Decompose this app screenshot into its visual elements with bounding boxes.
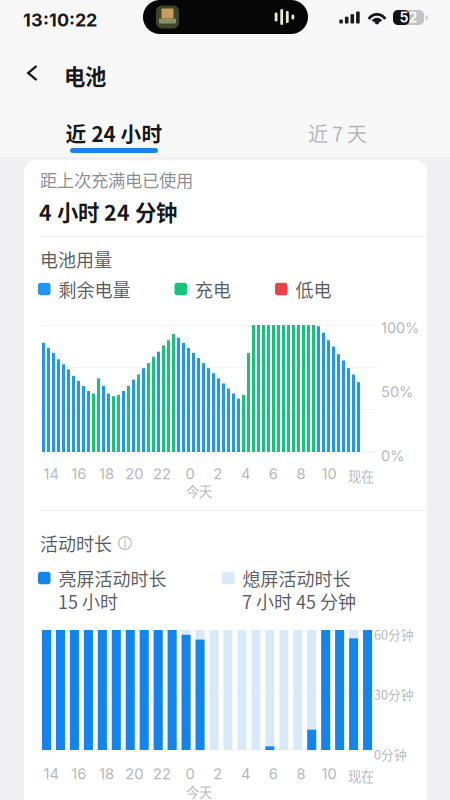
- staticText: 电池用量: [40, 246, 112, 272]
- staticText: 50%: [381, 383, 413, 401]
- staticText: 13:10:22: [23, 9, 97, 31]
- staticText: i: [123, 536, 126, 550]
- button[interactable]: 返回: [26, 54, 58, 92]
- staticText: 14: [43, 465, 58, 483]
- staticText: 0%: [381, 447, 404, 465]
- staticText: 100%: [381, 319, 419, 337]
- staticText: 4: [241, 765, 250, 783]
- staticText: 活动时长: [40, 530, 112, 556]
- staticText: 现在: [348, 766, 374, 785]
- staticText: 52: [399, 9, 417, 26]
- staticText: 0分钟: [374, 745, 407, 763]
- staticText: 8: [297, 465, 306, 483]
- staticText: 0: [185, 465, 194, 483]
- staticText: 10: [321, 765, 336, 783]
- button[interactable]: 近 24 小时: [24, 110, 204, 157]
- staticText: 充电: [195, 276, 231, 302]
- staticText: 16: [71, 765, 86, 783]
- staticText: 近 7 天: [308, 118, 367, 147]
- staticText: 4 小时 24 分钟: [39, 196, 177, 227]
- staticText: 22: [153, 465, 171, 483]
- staticText: 2: [213, 465, 222, 483]
- staticText: 16: [71, 465, 86, 483]
- staticText: 4: [241, 465, 250, 483]
- staticText: 18: [99, 765, 114, 783]
- staticText: 30分钟: [374, 685, 414, 703]
- staticText: 10: [321, 465, 336, 483]
- staticText: 熄屏活动时长: [242, 565, 350, 591]
- staticText: 60分钟: [374, 625, 414, 643]
- staticText: 现在: [348, 466, 374, 485]
- staticText: 剩余电量: [58, 276, 130, 302]
- staticText: 6: [269, 765, 278, 783]
- staticText: 距上次充满电已使用: [40, 167, 193, 192]
- staticText: 近 24 小时: [65, 118, 162, 148]
- staticText: 电池: [64, 60, 106, 91]
- staticText: 7 小时 45 分钟: [242, 588, 356, 614]
- staticText: 0: [185, 765, 194, 783]
- button[interactable]: 近 7 天: [255, 110, 420, 157]
- staticText: 6: [269, 465, 278, 483]
- staticText: 今天: [186, 782, 212, 800]
- staticText: 8: [297, 765, 306, 783]
- staticText: 亮屏活动时长: [58, 565, 166, 591]
- staticText: 22: [153, 765, 171, 783]
- staticText: 20: [125, 465, 143, 483]
- staticText: 低电: [295, 276, 331, 302]
- staticText: 20: [125, 765, 143, 783]
- staticText: 18: [99, 465, 114, 483]
- staticText: 15 小时: [58, 588, 118, 614]
- staticText: 今天: [186, 481, 212, 500]
- staticText: 2: [213, 765, 222, 783]
- staticText: 14: [43, 765, 58, 783]
